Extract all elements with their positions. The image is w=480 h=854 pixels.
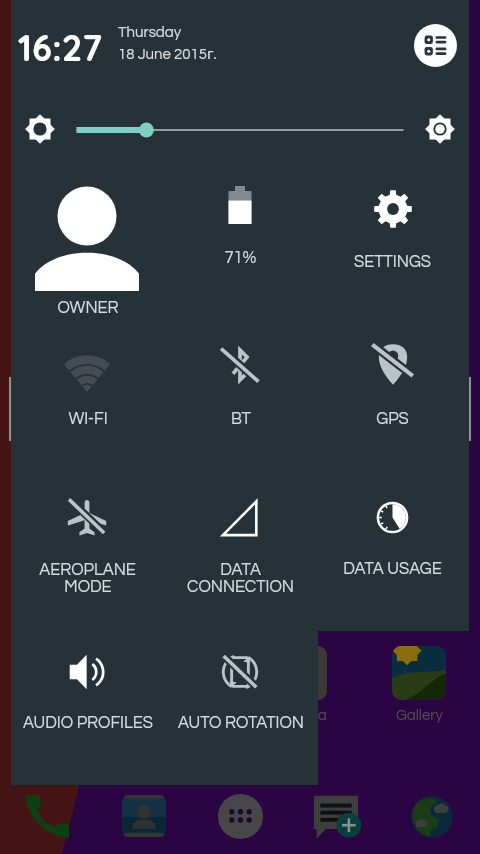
button[interactable] [164,170,317,271]
staticText: WI-FI [68,410,108,427]
button[interactable] [11,638,164,736]
button[interactable]: Camera [273,646,327,700]
staticText: GPS [376,410,409,427]
button[interactable] [11,329,164,432]
staticText: CONNECTION [187,578,294,595]
staticText: DATA USAGE [343,560,442,577]
staticText: Thursday [118,25,182,40]
button[interactable] [164,637,317,736]
staticText: DATA [220,561,261,578]
staticText: BT [231,410,251,427]
staticText: Gallery [396,708,443,723]
button[interactable]: Phone [0,786,96,846]
button[interactable]: Contacts [96,786,192,846]
button[interactable] [11,481,164,605]
button[interactable]: Brightness low [19,108,61,150]
staticText: 16:27 [18,25,102,70]
button[interactable]: Brightness slider [68,114,412,146]
button[interactable] [316,485,469,582]
button[interactable] [11,171,164,321]
staticText: AUTO ROTATION [178,714,304,731]
staticText: Camera [272,708,327,723]
staticText: AEROPLANE [39,561,136,578]
button[interactable] [164,327,317,432]
staticText: AUDIO PROFILES [23,714,153,731]
button[interactable]: Apps [192,786,288,846]
staticText: OWNER [57,299,119,316]
staticText: 18 June 2015г. [118,43,217,63]
button[interactable]: Messages [288,786,384,846]
staticText: SETTINGS [354,253,431,270]
staticText: MODE [64,578,112,595]
button[interactable] [164,483,317,605]
button[interactable] [316,174,469,275]
button[interactable] [316,325,469,432]
button[interactable]: Browser [384,786,480,846]
button[interactable]: Gallery [392,646,446,700]
button[interactable]: Quick settings list [414,24,457,67]
staticText: 71% [224,249,257,266]
button[interactable]: Auto brightness [419,108,461,150]
